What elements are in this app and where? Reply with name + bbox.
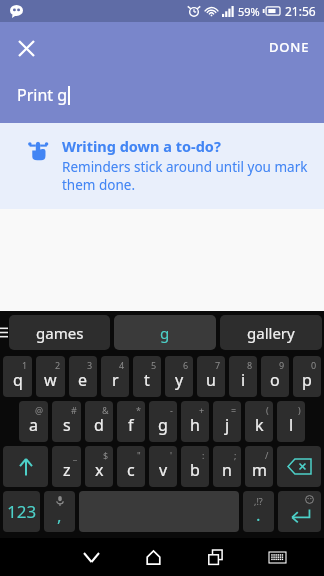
- button[interactable]: /: [245, 446, 273, 487]
- staticText: u: [206, 369, 216, 391]
- staticText: -: [170, 404, 173, 416]
- staticText: m: [252, 459, 267, 481]
- staticText: l: [289, 414, 294, 436]
- button[interactable]: &: [85, 401, 113, 442]
- button[interactable]: ,: [44, 491, 75, 532]
- staticText: Writing down a to-do?: [62, 136, 221, 156]
- button[interactable]: 3: [69, 356, 97, 397]
- button[interactable]: 123: [3, 491, 40, 532]
- staticText: #: [71, 404, 77, 416]
- button[interactable]: 0: [293, 356, 321, 397]
- staticText: 7: [215, 359, 221, 371]
- button[interactable]: ': [149, 446, 177, 487]
- staticText: f: [128, 414, 134, 436]
- button[interactable]: Writing down a to-do?: [0, 123, 324, 209]
- staticText: games: [36, 323, 84, 343]
- button[interactable]: ;: [213, 446, 241, 487]
- staticText: (: [266, 404, 269, 416]
- staticText: k: [255, 414, 264, 436]
- button[interactable]: 5: [133, 356, 161, 397]
- button[interactable]: 4: [101, 356, 129, 397]
- staticText: 123: [7, 500, 37, 523]
- button[interactable]: $: [85, 446, 113, 487]
- staticText: ': [170, 449, 173, 461]
- staticText: e: [78, 369, 88, 391]
- staticText: v: [159, 459, 168, 481]
- button[interactable]: (: [245, 401, 273, 442]
- staticText: /: [265, 449, 269, 461]
- button[interactable]: 9: [261, 356, 289, 397]
- staticText: ): [298, 404, 301, 416]
- button[interactable]: ,!?: [243, 491, 274, 532]
- staticText: j: [225, 414, 230, 436]
- staticText: 8: [247, 359, 253, 371]
- button[interactable]: Backspace: [277, 446, 321, 487]
- button[interactable]: 8: [229, 356, 257, 397]
- button[interactable]: :: [181, 446, 209, 487]
- button[interactable]: DONE: [261, 28, 318, 66]
- staticText: ,: [57, 504, 62, 527]
- staticText: d: [94, 414, 104, 436]
- button[interactable]: Shift: [3, 446, 48, 487]
- staticText: i: [241, 369, 246, 391]
- button[interactable]: +: [181, 401, 209, 442]
- staticText: &: [102, 404, 109, 416]
- button[interactable]: 1: [3, 356, 32, 397]
- button[interactable]: g: [114, 315, 216, 350]
- staticText: h: [190, 414, 200, 436]
- staticText: .: [256, 503, 261, 526]
- button[interactable]: ): [277, 401, 305, 442]
- staticText: 0: [311, 359, 317, 371]
- button[interactable]: 2: [36, 356, 65, 397]
- button[interactable]: 6: [165, 356, 193, 397]
- staticText: 5: [151, 359, 157, 371]
- button[interactable]: Home: [122, 538, 184, 576]
- staticText: o: [270, 369, 280, 391]
- staticText: ;: [234, 449, 237, 461]
- button[interactable]: gallery: [220, 315, 322, 350]
- staticText: s: [63, 414, 71, 436]
- staticText: p: [302, 369, 312, 391]
- button[interactable]: @: [19, 401, 48, 442]
- staticText: b: [190, 459, 200, 481]
- staticText: z: [63, 459, 71, 481]
- staticText: Reminders stick around until you mark th…: [62, 158, 310, 194]
- staticText: @: [35, 404, 44, 416]
- button[interactable]: Recents: [184, 538, 246, 576]
- staticText: n: [222, 459, 232, 481]
- staticText: t: [144, 369, 150, 391]
- staticText: ,!?: [254, 495, 263, 507]
- staticText: 3: [87, 359, 93, 371]
- staticText: q: [13, 369, 23, 391]
- staticText: :: [202, 449, 205, 461]
- staticText: 2: [55, 359, 61, 371]
- button[interactable]: games: [9, 315, 110, 350]
- staticText: Print g: [17, 84, 68, 106]
- staticText: *: [136, 404, 141, 416]
- staticText: 6: [183, 359, 189, 371]
- button[interactable]: Close: [6, 28, 46, 68]
- button[interactable]: *: [117, 401, 145, 442]
- button[interactable]: ": [117, 446, 145, 487]
- button[interactable]: #: [52, 401, 81, 442]
- button[interactable]: Enter: [278, 491, 321, 532]
- staticText: +: [199, 404, 205, 416]
- staticText: y: [175, 369, 184, 391]
- button[interactable]: Switch keyboard: [246, 538, 308, 576]
- staticText: gallery: [247, 323, 295, 343]
- button[interactable]: Menu: [0, 315, 9, 350]
- button[interactable]: 7: [197, 356, 225, 397]
- staticText: r: [112, 369, 119, 391]
- staticText: 21:56: [285, 3, 316, 19]
- button[interactable]: -: [149, 401, 177, 442]
- staticText: ": [137, 449, 141, 461]
- staticText: w: [44, 369, 57, 391]
- staticText: 1: [22, 359, 28, 371]
- button[interactable]: Back: [60, 538, 122, 576]
- staticText: g: [160, 323, 170, 343]
- staticText: g: [158, 414, 168, 436]
- button[interactable]: =: [213, 401, 241, 442]
- button[interactable]: _: [52, 446, 81, 487]
- staticText: a: [29, 414, 38, 436]
